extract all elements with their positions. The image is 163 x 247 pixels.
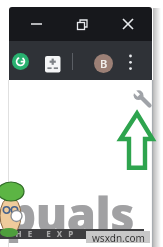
button[interactable] (12, 53, 29, 70)
button[interactable] (124, 50, 137, 74)
staticText: THE EXP (5, 228, 80, 239)
button[interactable]: wsxdn.com (86, 231, 150, 243)
button[interactable] (28, 16, 44, 32)
button[interactable] (45, 55, 61, 73)
button[interactable] (129, 84, 153, 110)
button[interactable]: B (94, 54, 113, 73)
staticText: puals (6, 182, 134, 246)
button[interactable] (120, 16, 136, 32)
staticText: wsxdn.com (92, 231, 145, 243)
button[interactable] (74, 17, 90, 33)
staticText: B (100, 56, 108, 71)
